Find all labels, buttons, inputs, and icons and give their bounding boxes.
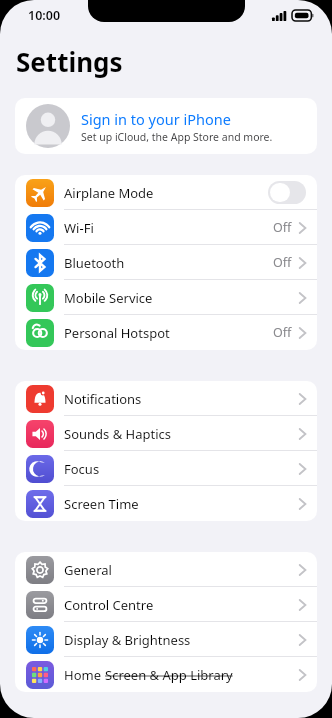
staticText: General (64, 561, 112, 579)
button[interactable]: Focus (15, 451, 317, 486)
staticText: 10:00 (28, 7, 61, 24)
button[interactable]: Personal Hotspot (15, 315, 317, 350)
button[interactable]: Wi-Fi (15, 210, 317, 245)
button[interactable]: Bluetooth (15, 245, 317, 280)
staticText: Settings (16, 44, 123, 79)
button[interactable]: Display & Brightness (15, 622, 317, 657)
staticText: Sign in to your iPhone (81, 109, 231, 129)
staticText: Wi-Fi (64, 219, 94, 237)
button[interactable]: Airplane Mode (15, 175, 317, 210)
button[interactable]: Sign in to your iPhone (15, 98, 317, 154)
staticText: Off (273, 254, 292, 271)
staticText: Notifications (64, 390, 142, 408)
staticText: Control Centre (64, 596, 154, 614)
button[interactable]: Sounds & Haptics (15, 416, 317, 451)
staticText: Home (64, 666, 105, 684)
staticText: Airplane Mode (64, 184, 154, 202)
staticText: Sounds & Haptics (64, 425, 172, 443)
staticText: Screen Time (64, 495, 139, 513)
button[interactable]: Control Centre (15, 587, 317, 622)
staticText: Screen & App Library (105, 666, 233, 684)
button[interactable]: Screen Time (15, 486, 317, 521)
button[interactable]: General (15, 552, 317, 587)
staticText: Focus (64, 460, 100, 478)
button[interactable]: Notifications (15, 381, 317, 416)
staticText: Display & Brightness (64, 631, 191, 649)
staticText: Off (273, 219, 292, 236)
staticText: Off (273, 324, 292, 341)
staticText: Bluetooth (64, 254, 125, 272)
button[interactable]: Home (15, 657, 317, 692)
staticText: Mobile Service (64, 289, 153, 307)
staticText: Set up iCloud, the App Store and more. (81, 130, 273, 144)
staticText: Personal Hotspot (64, 324, 170, 342)
button[interactable]: Mobile Service (15, 280, 317, 315)
